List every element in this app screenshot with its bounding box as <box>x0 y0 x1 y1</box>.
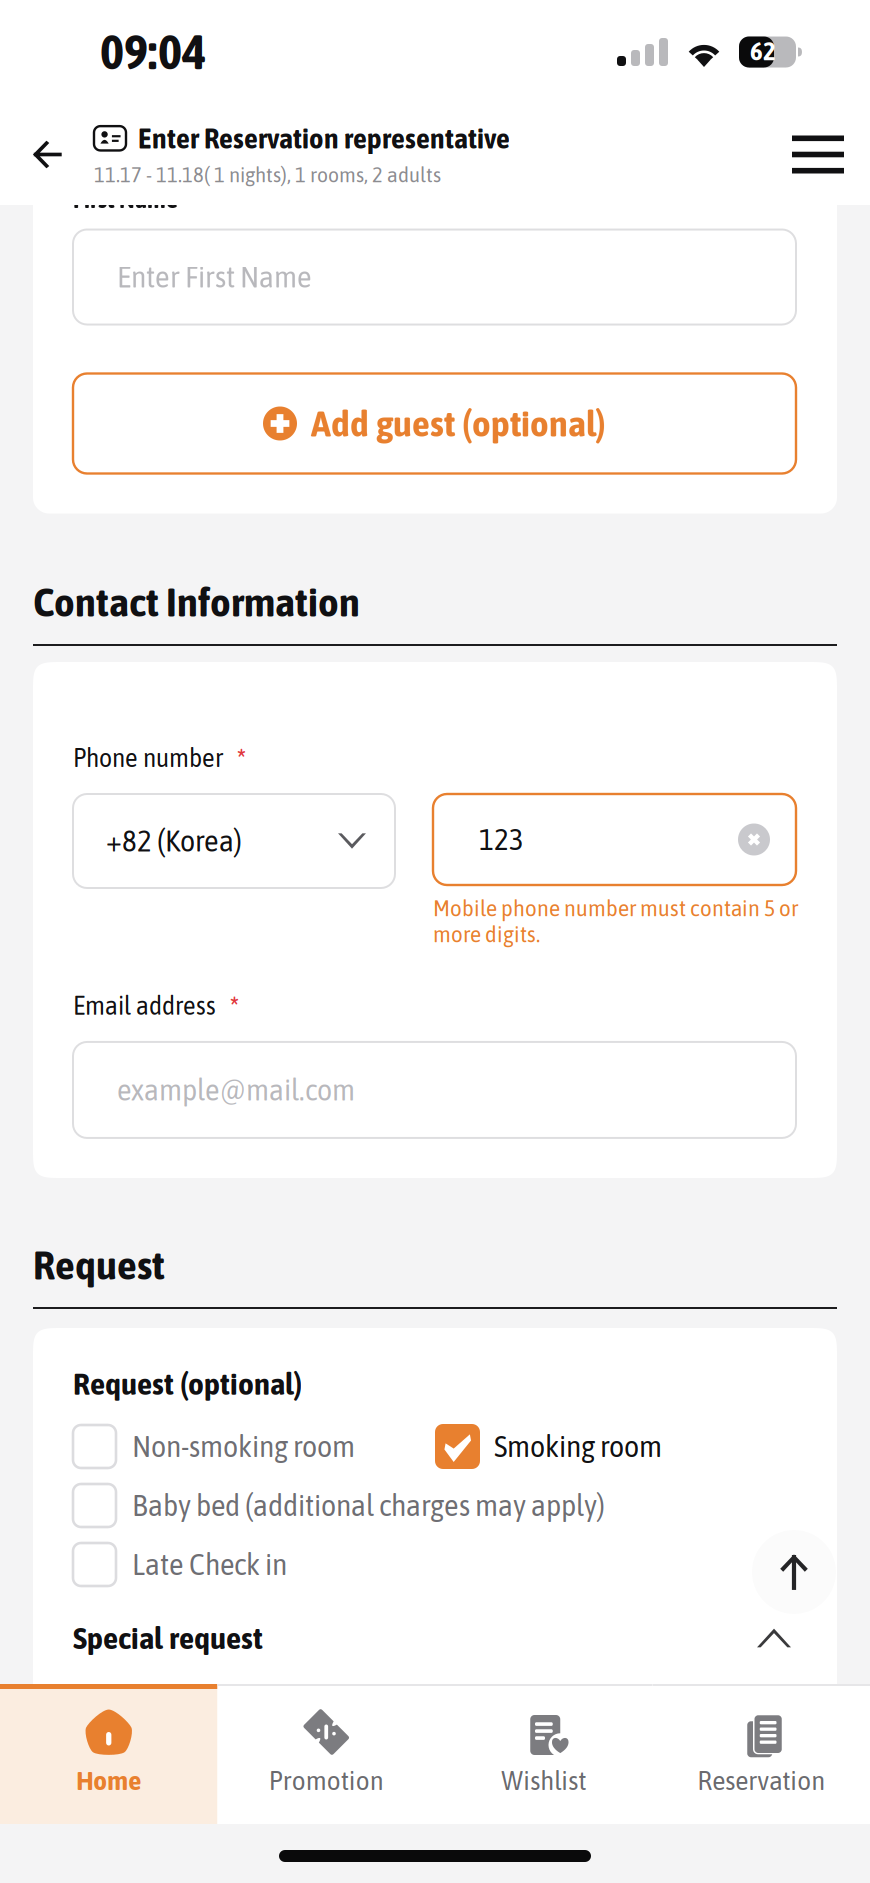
button[interactable]: Back <box>0 104 94 205</box>
staticText: Smoking room <box>494 1430 662 1463</box>
staticText: Add guest (optional) <box>311 403 606 444</box>
staticText: 11.17 - 11.18( 1 nights), 1 rooms, 2 adu… <box>94 162 441 187</box>
button[interactable]: Home <box>0 1684 217 1824</box>
button[interactable]: +82 (Korea) <box>73 794 395 888</box>
button[interactable]: Smoking room <box>435 1417 755 1476</box>
button[interactable]: Add guest (optional) <box>73 373 796 473</box>
staticText: * <box>237 742 246 772</box>
staticText: example@mail.com <box>117 1073 355 1107</box>
button[interactable]: Menu <box>766 104 870 205</box>
staticText: Enter Reservation representative <box>138 122 510 154</box>
staticText: Late Check in <box>132 1548 287 1581</box>
staticText: Contact Information <box>33 579 360 625</box>
staticText: Enter First Name <box>117 260 312 294</box>
staticText: Baby bed (additional charges may apply) <box>132 1489 605 1522</box>
button[interactable]: Non-smoking room <box>73 1417 435 1476</box>
button[interactable]: Special request <box>73 1616 796 1660</box>
staticText: Request <box>33 1242 165 1288</box>
staticText: 09:04 <box>100 24 206 79</box>
button[interactable]: Late Check in <box>73 1535 796 1594</box>
button[interactable]: Scroll to top <box>752 1530 836 1614</box>
staticText: 123 <box>479 823 524 856</box>
staticText: Mobile phone number must contain 5 or mo… <box>433 895 798 947</box>
button[interactable]: Promotion <box>217 1684 435 1824</box>
staticText: Non-smoking room <box>132 1430 355 1463</box>
button[interactable]: Baby bed (additional charges may apply) <box>73 1476 796 1535</box>
staticText: Request (optional) <box>73 1366 302 1401</box>
staticText: Special request <box>73 1620 263 1655</box>
staticText: Home <box>76 1765 141 1796</box>
button[interactable]: Wishlist <box>435 1684 652 1824</box>
staticText: Email address <box>73 991 216 1020</box>
staticText: Promotion <box>269 1765 384 1796</box>
button[interactable]: Clear <box>738 823 770 855</box>
button[interactable]: Reservation <box>652 1684 870 1824</box>
staticText: * <box>230 990 239 1020</box>
staticText: 62 <box>750 36 776 65</box>
staticText: Phone number <box>73 743 223 772</box>
staticText: Reservation <box>697 1765 825 1796</box>
staticText: First Name <box>73 185 178 213</box>
staticText: +82 (Korea) <box>106 824 242 858</box>
staticText: Wishlist <box>501 1765 586 1796</box>
